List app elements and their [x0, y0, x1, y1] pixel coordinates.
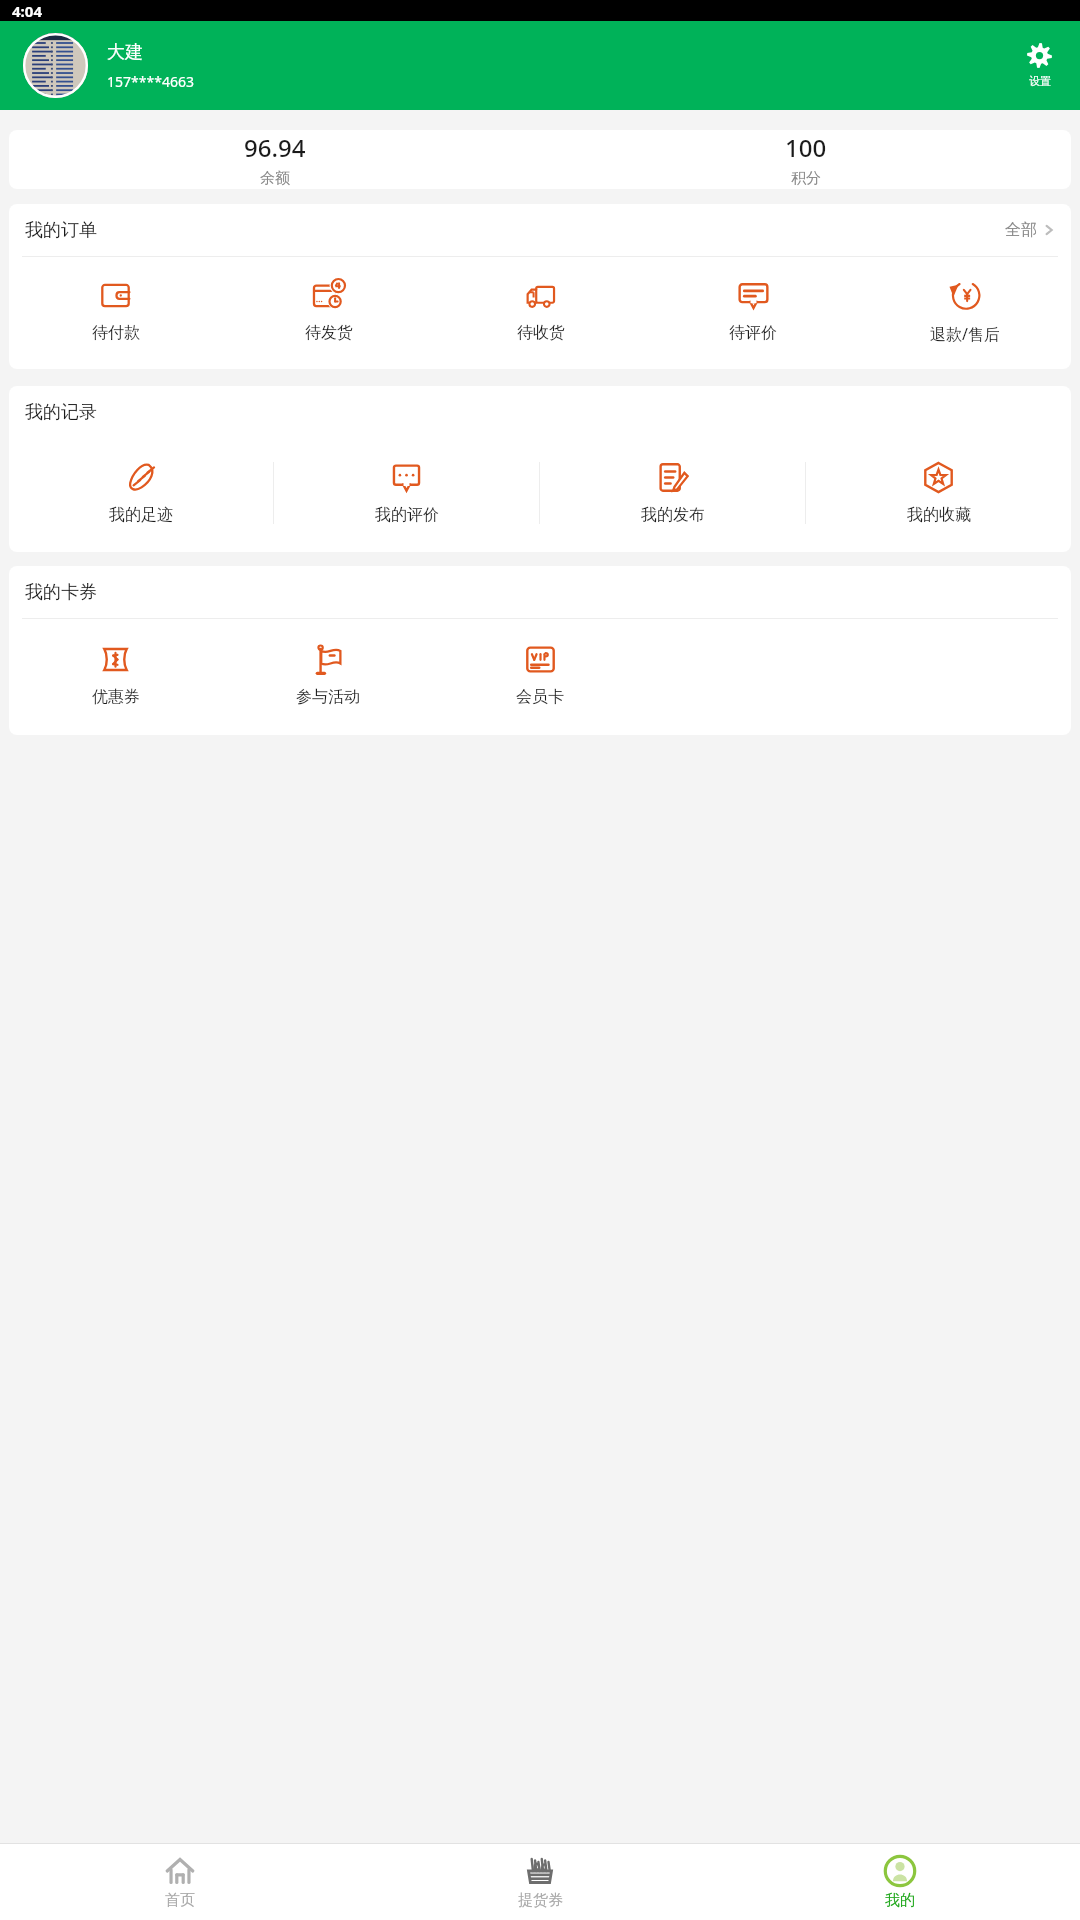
staticText: 首页 — [165, 1891, 195, 1910]
button[interactable]: 96.94 — [9, 130, 540, 189]
staticText: 我的卡券 — [25, 581, 97, 604]
staticText: 参与活动 — [296, 687, 360, 707]
button[interactable]: 待评价 — [647, 271, 859, 351]
staticText: 我的发布 — [641, 505, 705, 525]
staticText: 157****4663 — [107, 72, 194, 91]
staticText: 积分 — [791, 169, 821, 188]
button[interactable]: 优惠券 — [9, 635, 222, 715]
staticText: 我的订单 — [25, 219, 97, 242]
button[interactable]: 设置 — [1021, 37, 1058, 94]
staticText: 待发货 — [305, 323, 353, 343]
button[interactable]: 待发货 — [222, 271, 435, 351]
staticText: 待付款 — [92, 323, 140, 343]
button[interactable]: 全部 — [1005, 220, 1055, 240]
staticText: 待评价 — [729, 323, 777, 343]
staticText: 我的足迹 — [109, 505, 173, 525]
staticText: 会员卡 — [516, 687, 564, 707]
button[interactable]: 参与活动 — [222, 635, 434, 715]
staticText: 待收货 — [517, 323, 565, 343]
staticText: 96.94 — [244, 131, 306, 164]
staticText: 我的评价 — [375, 505, 439, 525]
staticText: 全部 — [1005, 220, 1037, 240]
button[interactable]: 我的足迹 — [9, 453, 273, 533]
button[interactable]: 我的评价 — [274, 453, 539, 533]
staticText: 余额 — [260, 169, 290, 188]
button[interactable]: 我的收藏 — [806, 453, 1071, 533]
staticText: 4:04 — [12, 1, 42, 21]
staticText: 提货券 — [518, 1891, 563, 1910]
button[interactable]: 提货券 — [360, 1844, 720, 1920]
staticText: 大建 — [107, 41, 143, 64]
staticText: 我的 — [885, 1891, 915, 1910]
button[interactable]: 首页 — [0, 1844, 360, 1920]
button[interactable]: 退款/售后 — [859, 271, 1071, 353]
button[interactable]: 待收货 — [435, 271, 647, 351]
button[interactable]: 头像 — [23, 33, 88, 98]
staticText: 优惠券 — [92, 687, 140, 707]
button[interactable]: 100 — [540, 130, 1071, 189]
button[interactable]: 待付款 — [9, 271, 222, 351]
staticText: 100 — [785, 131, 827, 164]
staticText: 我的收藏 — [907, 505, 971, 525]
button[interactable]: 我的发布 — [540, 453, 805, 533]
staticText: 设置 — [1029, 74, 1051, 88]
button[interactable]: 会员卡 — [434, 635, 646, 715]
staticText: 退款/售后 — [930, 323, 1000, 345]
button[interactable]: 我的 — [720, 1844, 1080, 1920]
staticText: 我的记录 — [25, 401, 97, 424]
